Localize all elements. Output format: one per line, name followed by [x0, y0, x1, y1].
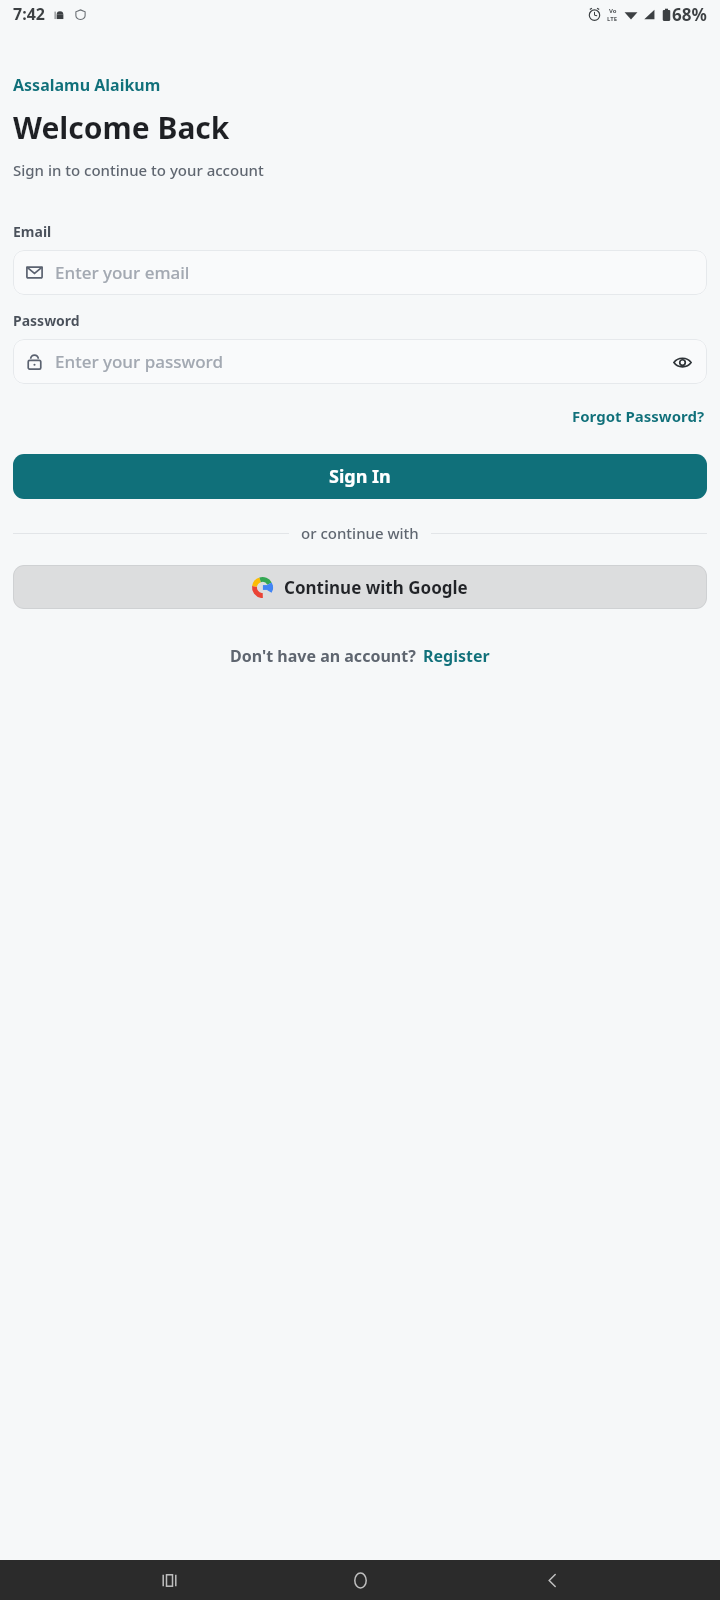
staticText: Vo	[609, 7, 617, 15]
button[interactable]: Continue with Google	[13, 565, 707, 609]
staticText: Forgot Password?	[572, 406, 705, 426]
button[interactable]: Recents	[146, 1560, 192, 1600]
staticText: Password	[13, 311, 80, 330]
staticText: Assalamu Alaikum	[13, 74, 161, 96]
staticText: Enter your email	[55, 261, 695, 284]
staticText: Email	[13, 222, 52, 241]
staticText: Sign In	[329, 464, 391, 489]
button[interactable]: Sign In	[13, 454, 707, 499]
staticText: LTE	[607, 15, 618, 23]
staticText: or continue with	[301, 523, 419, 543]
staticText: Welcome Back	[13, 107, 230, 148]
staticText: Don't have an account?	[230, 645, 416, 667]
staticText: 7:42	[13, 3, 45, 25]
button[interactable]: Forgot Password?	[570, 402, 707, 430]
button[interactable]: Register	[423, 645, 490, 667]
button[interactable]: Enter your password	[13, 339, 707, 384]
staticText: 68%	[672, 3, 707, 26]
button[interactable]: Enter your email	[13, 250, 707, 295]
button[interactable]: Back	[529, 1560, 575, 1600]
staticText: Register	[423, 645, 490, 667]
staticText: Enter your password	[55, 350, 669, 373]
button[interactable]: Home	[337, 1560, 383, 1600]
staticText: Continue with Google	[284, 576, 468, 599]
staticText: Sign in to continue to your account	[13, 160, 264, 180]
button[interactable]: Show password	[669, 349, 695, 375]
